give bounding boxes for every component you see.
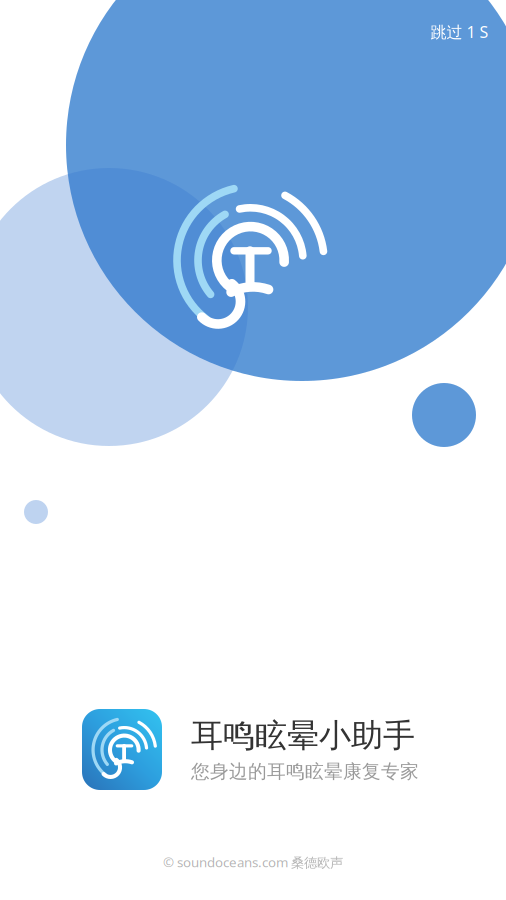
- staticText: 您身边的耳鸣眩晕康复专家: [191, 760, 419, 783]
- staticText: 跳过 1 S: [430, 21, 488, 42]
- staticText: © soundoceans.com 桑德欧声: [163, 853, 343, 871]
- button[interactable]: 跳过 1 S: [416, 12, 502, 51]
- staticText: 耳鸣眩晕小助手: [191, 716, 415, 755]
